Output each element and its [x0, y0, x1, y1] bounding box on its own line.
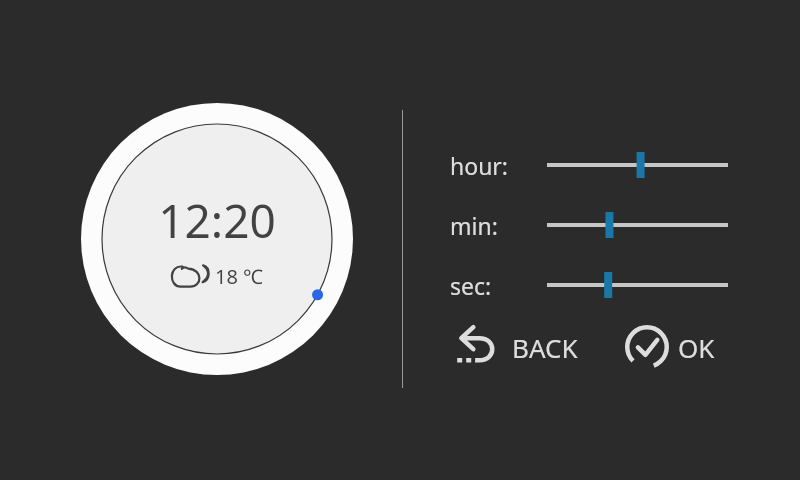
button[interactable]: hour: [440, 148, 740, 182]
staticText: 12:20 [158, 189, 276, 252]
button[interactable]: min: [440, 208, 740, 242]
staticText: sec: [450, 270, 492, 301]
button[interactable]: Watch face preview [81, 103, 353, 375]
staticText: 18 ℃ [215, 263, 263, 290]
button[interactable]: OK [620, 318, 719, 376]
button[interactable]: sec: [440, 268, 740, 302]
button[interactable]: BACK [448, 319, 582, 375]
staticText: hour: [450, 150, 509, 181]
staticText: min: [450, 210, 498, 241]
staticText: BACK [512, 330, 578, 365]
staticText: OK [678, 330, 715, 365]
